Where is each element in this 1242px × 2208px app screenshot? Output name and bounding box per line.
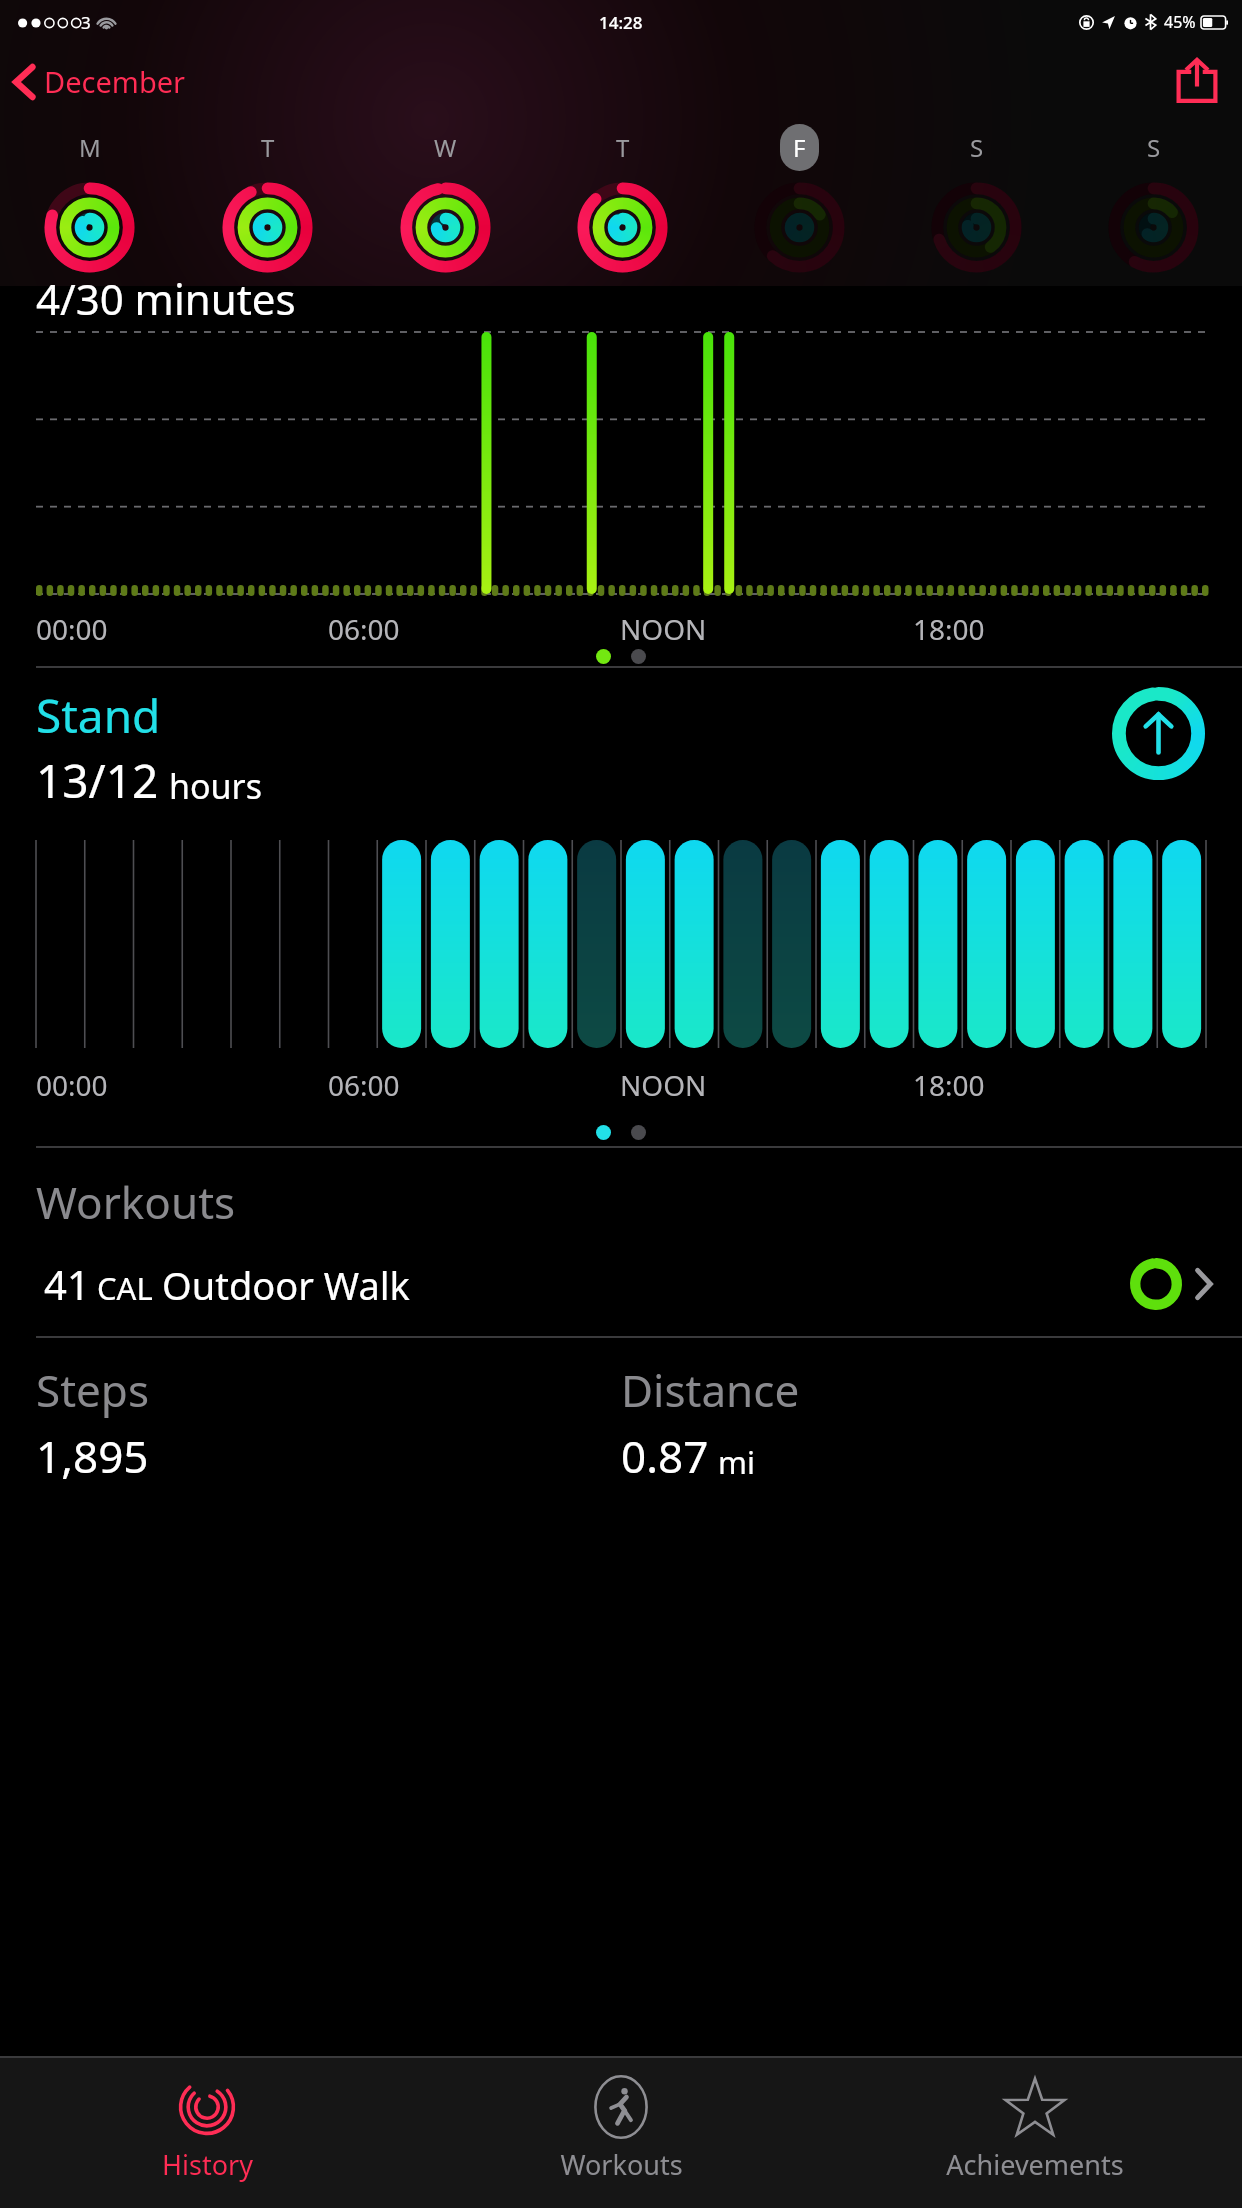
staticText: History [162, 2146, 253, 2183]
button[interactable]: M [0, 118, 178, 286]
staticText: Distance [621, 1360, 800, 1420]
staticText: Stand [36, 684, 161, 747]
staticText: hours [169, 763, 262, 809]
staticText: Steps [36, 1360, 149, 1420]
button[interactable]: December [0, 56, 198, 107]
staticText: 3 [81, 11, 91, 34]
staticText: Workouts [36, 1172, 236, 1232]
staticText: 18:00 [913, 610, 985, 648]
button[interactable]: S [1065, 118, 1242, 286]
staticText: 00:00 [36, 1066, 108, 1104]
button[interactable]: S [888, 118, 1065, 286]
staticText: T [261, 131, 275, 164]
staticText: 00:00 [36, 610, 108, 648]
button[interactable]: W [356, 118, 534, 286]
staticText: S [970, 131, 984, 164]
button[interactable]: T [534, 118, 711, 286]
staticText: 06:00 [328, 1066, 400, 1104]
staticText: mi [718, 1441, 755, 1483]
staticText: 06:00 [328, 610, 400, 648]
staticText: Achievements [946, 2146, 1124, 2183]
button[interactable]: Stand goal completed [1111, 686, 1206, 781]
button[interactable]: T [178, 118, 356, 286]
staticText: CAL [97, 1267, 153, 1309]
staticText: 0.87 [621, 1426, 709, 1486]
staticText: Outdoor Walk [162, 1259, 410, 1311]
button[interactable]: History [0, 2058, 414, 2208]
staticText: M [79, 131, 101, 164]
staticText: S [1147, 131, 1161, 164]
staticText: NOON [620, 610, 707, 648]
button[interactable]: Share [1174, 58, 1220, 104]
staticText: 14:28 [599, 11, 643, 34]
staticText: 45% [1164, 11, 1196, 33]
staticText: 4/30 minutes [36, 270, 296, 327]
staticText: 1,895 [36, 1426, 149, 1486]
staticText: Workouts [560, 2146, 683, 2183]
button[interactable]: Workouts [414, 2058, 828, 2208]
staticText: F [793, 131, 806, 164]
staticText: 18:00 [913, 1066, 985, 1104]
button[interactable]: Achievements [828, 2058, 1242, 2208]
staticText: December [44, 62, 186, 101]
staticText: NOON [620, 1066, 707, 1104]
button[interactable]: F [711, 118, 888, 286]
staticText: W [434, 131, 457, 164]
staticText: 13/12 [36, 749, 159, 812]
button[interactable]: 41 [0, 1232, 1242, 1336]
staticText: T [616, 131, 630, 164]
staticText: 41 [44, 1257, 90, 1311]
